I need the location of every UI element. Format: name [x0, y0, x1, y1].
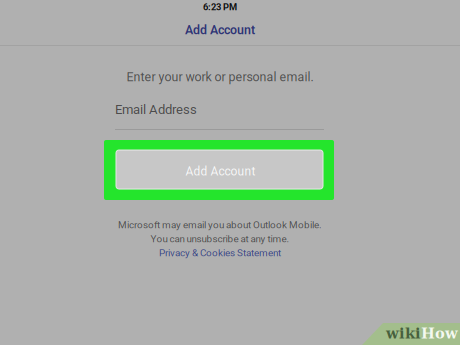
staticText: Add Account: [185, 23, 255, 37]
staticText: How: [421, 325, 458, 342]
button[interactable]: Add Account: [116, 150, 323, 189]
button[interactable]: Email Address: [115, 102, 324, 130]
staticText: Enter your work or personal email.: [126, 70, 313, 84]
staticText: Email Address: [115, 102, 197, 117]
staticText: Add Account: [185, 164, 255, 179]
button[interactable]: Add Account: [0, 15, 440, 45]
button[interactable]: Privacy & Cookies Statement: [0, 246, 440, 260]
staticText: Microsoft may email you about Outlook Mo…: [118, 219, 322, 231]
staticText: You can unsubscribe at any time.: [150, 233, 289, 245]
staticText: 6:23 PM: [203, 1, 237, 12]
staticText: Privacy & Cookies Statement: [159, 247, 281, 259]
staticText: wiki: [386, 325, 421, 342]
